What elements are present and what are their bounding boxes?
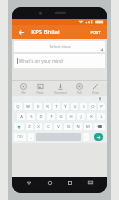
button[interactable]: K xyxy=(87,113,95,120)
staticText: W xyxy=(26,104,30,110)
button[interactable]: E xyxy=(34,103,42,110)
button[interactable]: Backspace xyxy=(94,123,105,130)
button[interactable]: L xyxy=(97,113,105,120)
staticText: Y xyxy=(64,104,67,110)
staticText: T xyxy=(55,104,58,110)
button[interactable]: Poll xyxy=(75,82,84,96)
staticText: F xyxy=(50,114,53,120)
button[interactable]: B xyxy=(64,123,72,130)
button[interactable]: Send xyxy=(94,133,103,141)
button[interactable]: Home xyxy=(45,178,54,187)
button[interactable]: Q xyxy=(14,103,22,110)
button[interactable]: G xyxy=(57,113,65,120)
staticText: G xyxy=(59,114,63,120)
button[interactable]: R xyxy=(44,103,51,110)
button[interactable]: Y xyxy=(62,103,69,110)
staticText: Poll xyxy=(77,91,82,95)
button[interactable]: H xyxy=(67,113,75,120)
button[interactable]: D xyxy=(37,113,45,120)
button[interactable]: M xyxy=(84,123,92,130)
button[interactable]: Recents xyxy=(65,178,74,187)
staticText: I xyxy=(83,104,85,110)
staticText: O xyxy=(91,104,95,110)
staticText: ?123 xyxy=(17,135,23,139)
button[interactable]: X xyxy=(35,123,42,130)
button[interactable]: W xyxy=(24,103,32,110)
staticText: KPS Bhilai xyxy=(31,28,60,36)
staticText: POST xyxy=(90,30,101,35)
button[interactable]: Document xyxy=(53,82,68,96)
staticText: X xyxy=(37,124,40,130)
staticText: What's on your mind xyxy=(19,58,63,64)
staticText: Photo xyxy=(36,91,44,95)
staticText: U xyxy=(73,104,77,110)
staticText: V xyxy=(57,124,60,130)
button[interactable]: J xyxy=(77,113,85,120)
button[interactable]: N xyxy=(74,123,82,130)
staticText: . xyxy=(85,134,87,140)
staticText: D xyxy=(39,114,43,120)
button[interactable]: Select class xyxy=(14,41,105,52)
staticText: Document xyxy=(54,91,67,95)
staticText: Z xyxy=(28,124,31,130)
button[interactable]: T xyxy=(53,103,60,110)
button[interactable]: Shift xyxy=(14,123,24,130)
button[interactable]: Photo xyxy=(35,82,45,96)
button[interactable]: P xyxy=(98,103,105,110)
button[interactable]: A xyxy=(17,113,25,120)
button[interactable]: Switch keyboard xyxy=(86,178,95,187)
staticText: , xyxy=(30,134,32,140)
staticText: P xyxy=(100,104,103,110)
button[interactable]: Back xyxy=(24,178,33,187)
button[interactable]: Draw xyxy=(91,82,100,96)
button[interactable]: ?123 xyxy=(14,133,26,141)
staticText: M xyxy=(86,124,90,130)
button[interactable]: O xyxy=(89,103,96,110)
staticText: S xyxy=(30,114,33,120)
button[interactable]: V xyxy=(54,123,62,130)
staticText: H xyxy=(69,114,73,120)
staticText: File xyxy=(21,91,26,95)
staticText: A xyxy=(20,114,23,120)
staticText: L xyxy=(100,114,103,120)
button[interactable]: C xyxy=(44,123,52,130)
staticText: K xyxy=(90,114,93,120)
staticText: B xyxy=(67,124,70,130)
staticText: Draw xyxy=(92,91,99,95)
button[interactable]: Back xyxy=(16,27,27,38)
button[interactable]: Z xyxy=(26,123,33,130)
staticText: N xyxy=(76,124,80,130)
staticText: C xyxy=(47,124,50,130)
button[interactable]: , xyxy=(28,133,34,141)
staticText: Select class xyxy=(49,44,71,49)
button[interactable]: POST xyxy=(88,29,103,36)
button[interactable]: F xyxy=(47,113,55,120)
staticText: R xyxy=(46,104,49,110)
button[interactable]: File xyxy=(19,82,28,96)
button[interactable]: I xyxy=(80,103,87,110)
button[interactable]: U xyxy=(71,103,78,110)
button[interactable]: S xyxy=(27,113,35,120)
staticText: E xyxy=(37,104,40,110)
staticText: J xyxy=(80,114,82,120)
button[interactable]: What's on your mind xyxy=(14,54,105,68)
staticText: Q xyxy=(16,104,20,110)
